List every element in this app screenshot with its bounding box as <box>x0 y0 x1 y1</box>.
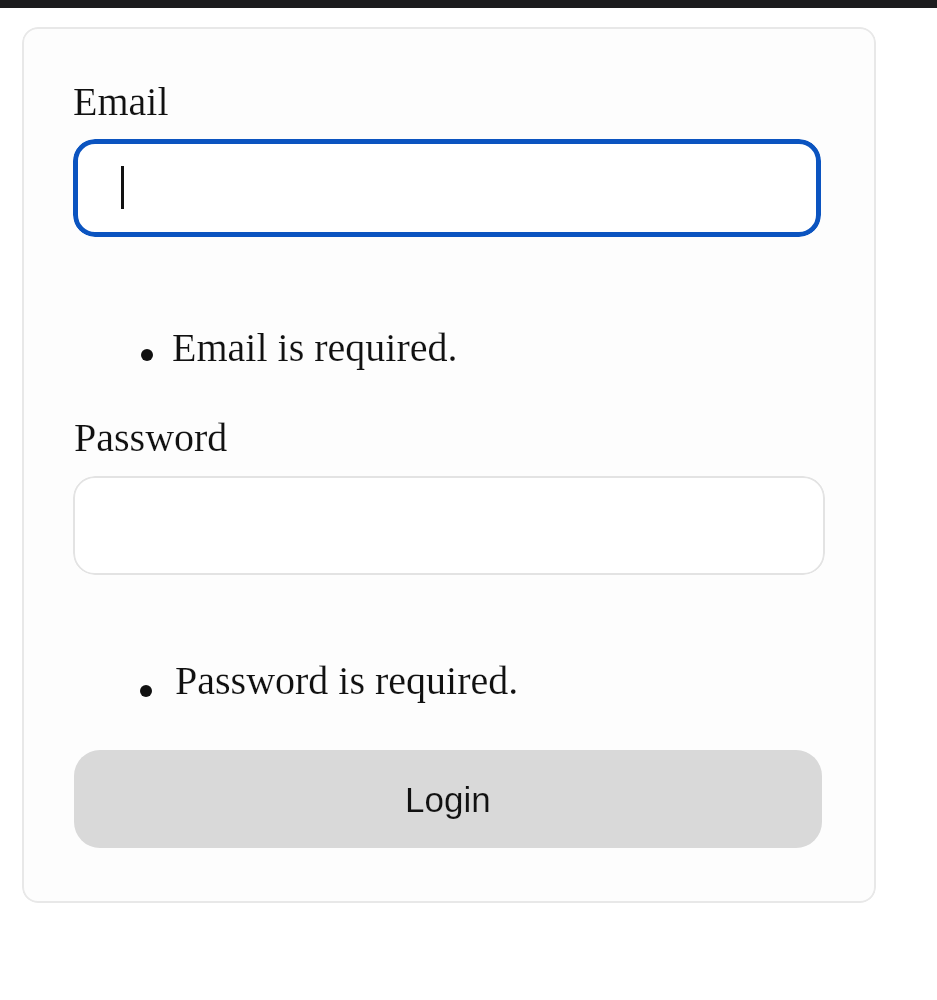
staticText: Email <box>73 79 169 123</box>
staticText: Password <box>74 415 228 459</box>
button[interactable] <box>73 476 825 575</box>
button[interactable] <box>73 139 821 237</box>
button[interactable]: Login <box>74 750 822 848</box>
staticText: Login <box>405 780 491 819</box>
staticText: Email is required. <box>172 325 458 369</box>
staticText: Password is required. <box>175 658 519 702</box>
